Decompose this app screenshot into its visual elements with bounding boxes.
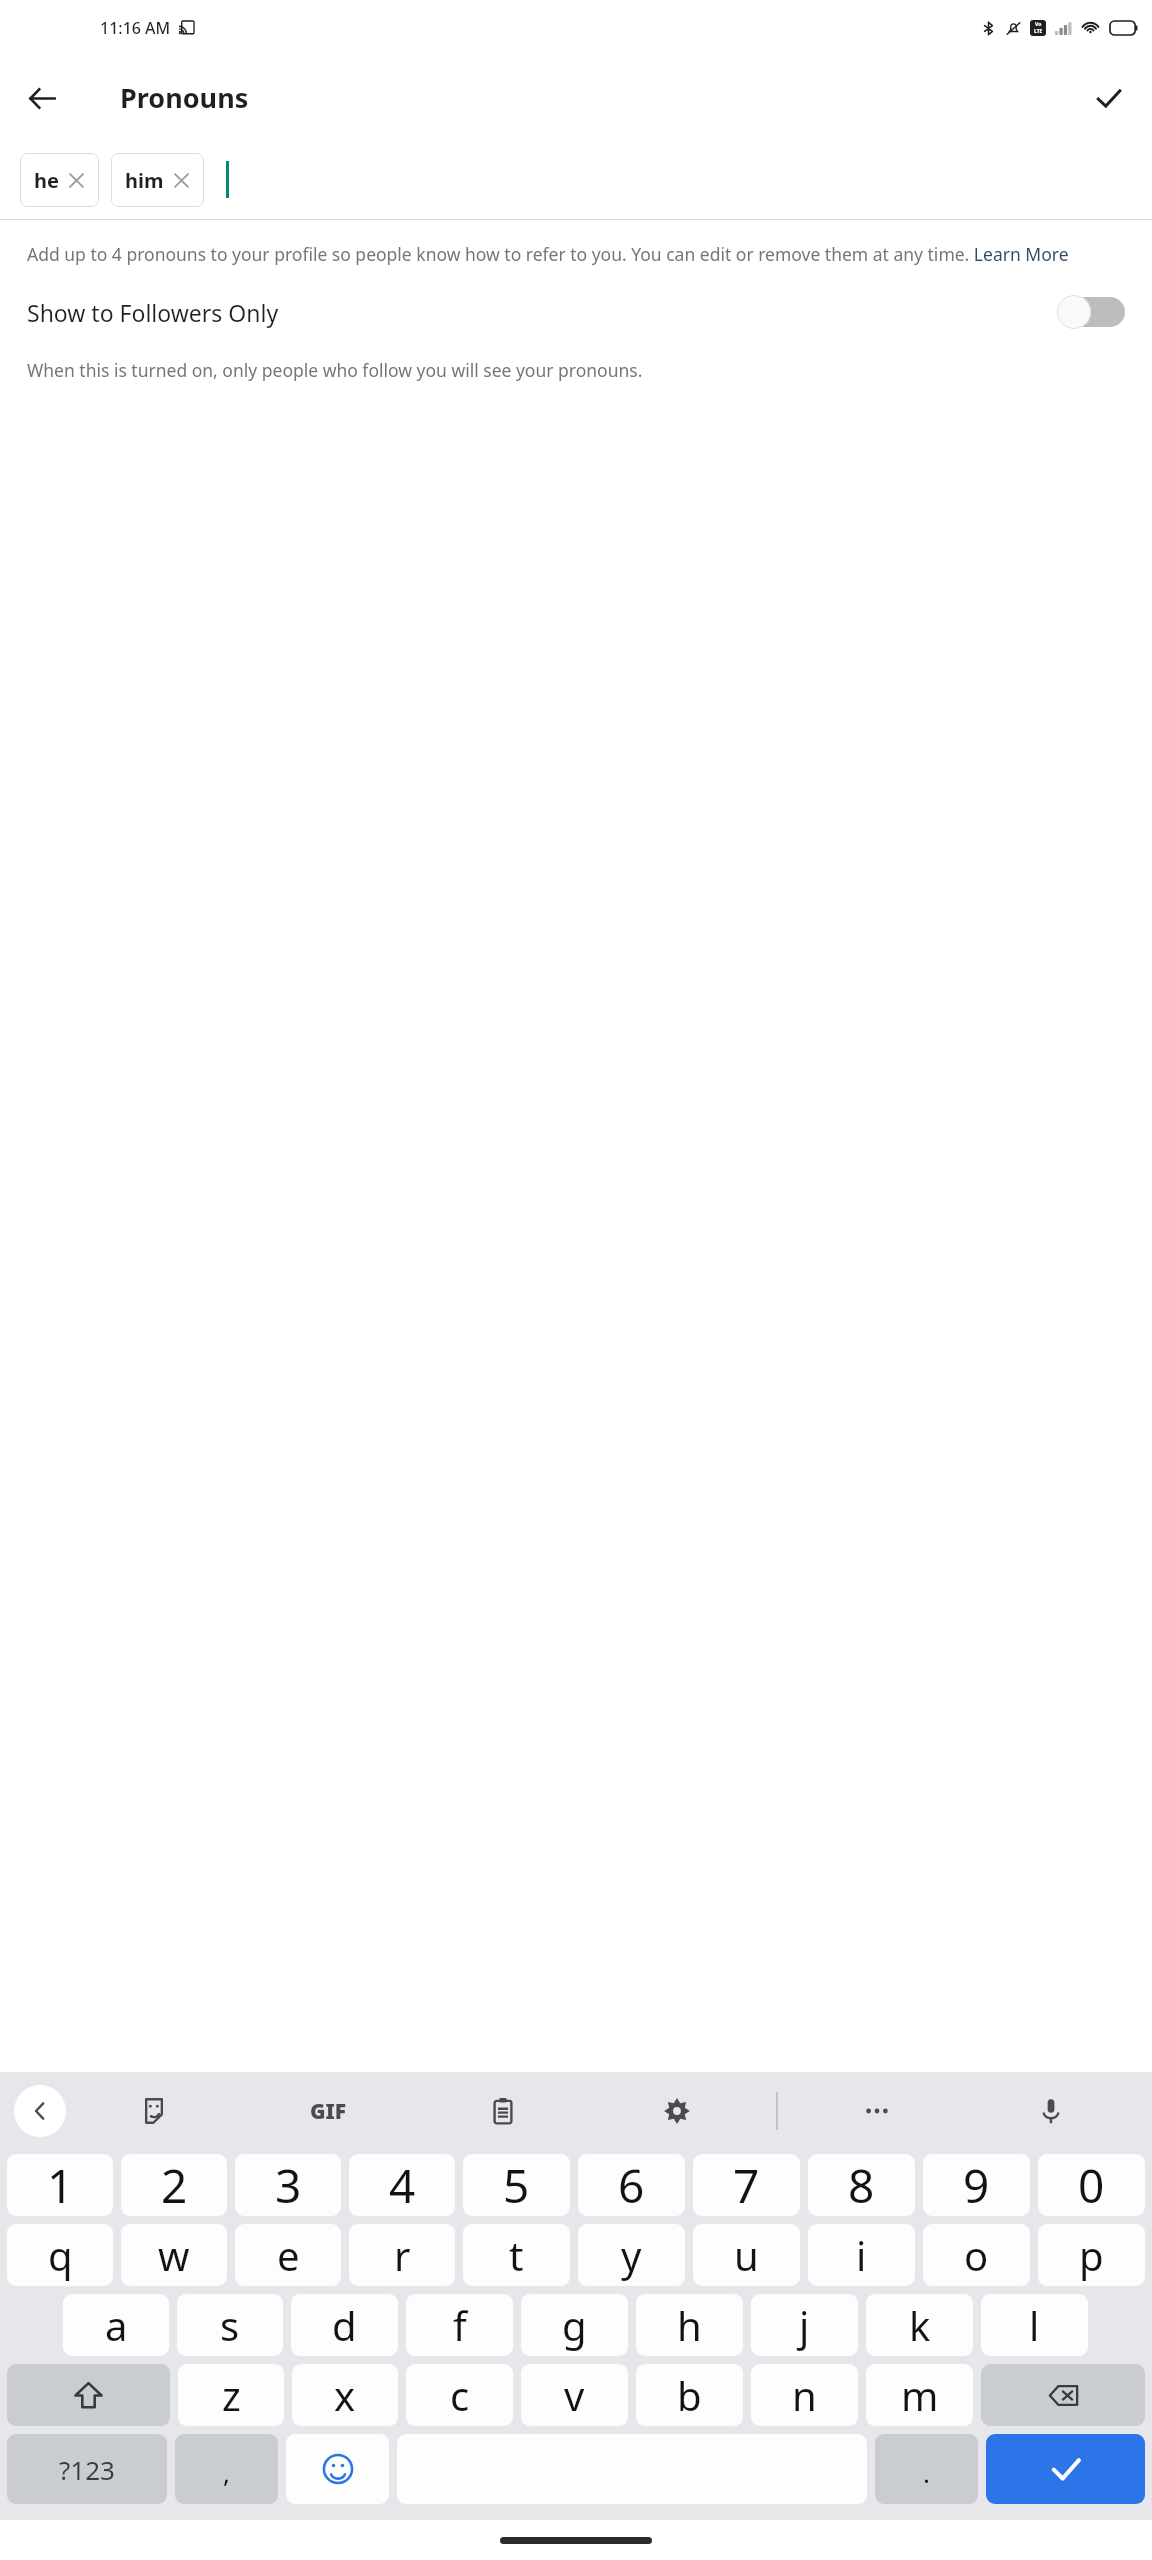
button[interactable]: More <box>851 2085 903 2137</box>
button[interactable]: g <box>521 2294 628 2356</box>
button[interactable]: o <box>923 2224 1030 2286</box>
staticText: h <box>677 2298 702 2352</box>
button[interactable]: . <box>875 2434 978 2504</box>
button[interactable]: 2 <box>121 2154 227 2216</box>
staticText: y <box>621 2228 642 2282</box>
button[interactable]: , <box>175 2434 278 2504</box>
button[interactable]: t <box>463 2224 570 2286</box>
button[interactable]: q <box>7 2224 113 2286</box>
staticText: n <box>792 2368 817 2422</box>
button[interactable]: Emoji <box>286 2434 389 2504</box>
staticText: 9 <box>963 2154 990 2216</box>
button[interactable]: r <box>349 2224 455 2286</box>
button[interactable]: u <box>693 2224 800 2286</box>
button[interactable]: 0 <box>1038 2154 1145 2216</box>
staticText: g <box>562 2298 587 2352</box>
staticText: Show to Followers Only <box>27 297 1057 328</box>
button[interactable]: Close toolbar <box>14 2085 66 2137</box>
staticText: l <box>1029 2298 1040 2352</box>
staticText: ?123 <box>59 2452 115 2487</box>
button[interactable]: k <box>866 2294 973 2356</box>
staticText: him <box>125 167 164 194</box>
button[interactable]: l <box>981 2294 1088 2356</box>
button[interactable]: Back <box>12 68 72 128</box>
staticText: v <box>564 2368 585 2422</box>
staticText: q <box>48 2228 73 2282</box>
button[interactable]: c <box>406 2364 513 2426</box>
staticText: Pronouns <box>120 79 249 116</box>
staticText: t <box>509 2228 524 2282</box>
staticText: 5 <box>503 2154 530 2216</box>
button[interactable]: Settings <box>651 2085 703 2137</box>
button[interactable]: a <box>63 2294 169 2356</box>
button[interactable]: y <box>578 2224 685 2286</box>
staticText: z <box>222 2368 241 2422</box>
button[interactable]: Save <box>1078 68 1138 128</box>
button[interactable]: d <box>291 2294 398 2356</box>
staticText: When this is turned on, only people who … <box>27 358 1125 382</box>
button[interactable]: him <box>111 153 204 207</box>
staticText: Add up to 4 pronouns to your profile so … <box>27 242 1125 266</box>
button[interactable]: s <box>177 2294 283 2356</box>
button[interactable]: m <box>866 2364 973 2426</box>
button[interactable]: Backspace <box>981 2364 1145 2426</box>
button[interactable]: 5 <box>463 2154 570 2216</box>
staticText: x <box>334 2368 356 2422</box>
button[interactable]: Stickers <box>128 2085 180 2137</box>
button[interactable]: 9 <box>923 2154 1030 2216</box>
staticText: k <box>909 2298 931 2352</box>
button[interactable]: e <box>235 2224 341 2286</box>
staticText: 2 <box>161 2154 188 2216</box>
button[interactable]: b <box>636 2364 743 2426</box>
staticText: 0 <box>1078 2154 1105 2216</box>
button[interactable]: 3 <box>235 2154 341 2216</box>
staticText: LTE <box>1034 28 1043 35</box>
button[interactable]: Enter <box>986 2434 1145 2504</box>
staticText: he <box>34 167 59 194</box>
staticText: j <box>799 2298 810 2352</box>
staticText: d <box>332 2298 357 2352</box>
button[interactable]: 7 <box>693 2154 800 2216</box>
button[interactable]: h <box>636 2294 743 2356</box>
button[interactable]: n <box>751 2364 858 2426</box>
staticText: f <box>453 2298 467 2352</box>
staticText: 3 <box>275 2154 302 2216</box>
staticText: e <box>277 2228 300 2282</box>
button[interactable]: Voice input <box>1025 2085 1077 2137</box>
staticText: . <box>923 2455 930 2490</box>
staticText: 6 <box>618 2154 645 2216</box>
staticText: 7 <box>733 2154 760 2216</box>
button[interactable]: v <box>521 2364 628 2426</box>
staticText: 1 <box>47 2154 74 2216</box>
button[interactable]: Show to Followers Only <box>0 266 1152 358</box>
button[interactable]: Clipboard <box>477 2085 529 2137</box>
staticText: c <box>450 2368 470 2422</box>
button[interactable]: 6 <box>578 2154 685 2216</box>
button[interactable]: f <box>406 2294 513 2356</box>
staticText: 4 <box>389 2154 416 2216</box>
button[interactable]: 4 <box>349 2154 455 2216</box>
staticText: m <box>901 2368 939 2422</box>
button[interactable]: z <box>178 2364 284 2426</box>
button[interactable]: i <box>808 2224 915 2286</box>
button[interactable]: ?123 <box>7 2434 167 2504</box>
button[interactable]: w <box>121 2224 227 2286</box>
button[interactable]: 8 <box>808 2154 915 2216</box>
staticText: 8 <box>848 2154 875 2216</box>
button[interactable]: GIF <box>302 2089 355 2134</box>
staticText: o <box>964 2228 989 2282</box>
staticText: w <box>158 2228 190 2282</box>
button[interactable]: x <box>292 2364 398 2426</box>
button[interactable]: he <box>20 153 99 207</box>
staticText: GIF <box>310 2097 347 2126</box>
button[interactable]: Shift <box>7 2364 170 2426</box>
button[interactable]: p <box>1038 2224 1145 2286</box>
button[interactable]: 1 <box>7 2154 113 2216</box>
button[interactable]: j <box>751 2294 858 2356</box>
staticText: a <box>105 2298 128 2352</box>
staticText: u <box>734 2228 759 2282</box>
staticText: Vo <box>1035 21 1042 28</box>
staticText: 11:16 AM <box>100 17 171 39</box>
staticText: s <box>220 2298 240 2352</box>
